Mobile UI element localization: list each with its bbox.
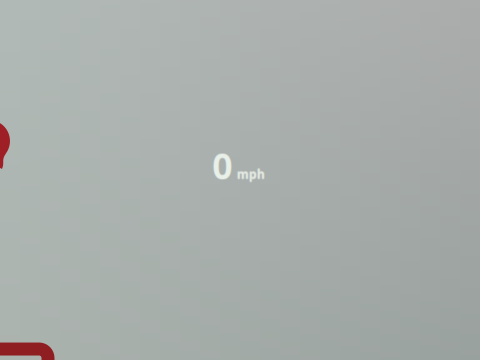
staticText: 0	[212, 142, 232, 188]
staticText: mph	[238, 167, 266, 182]
staticText: 0	[213, 142, 233, 188]
button[interactable]: 0	[0, 0, 480, 360]
staticText: mph	[237, 167, 265, 183]
staticText: 0	[213, 143, 233, 189]
staticText: mph	[238, 166, 266, 182]
staticText: mph	[238, 165, 266, 181]
staticText: mph	[236, 167, 264, 182]
staticText: 0	[212, 143, 232, 189]
staticText: mph	[236, 166, 264, 182]
staticText: mph	[237, 165, 265, 181]
staticText: 0	[211, 142, 231, 188]
staticText: 0	[212, 143, 232, 189]
staticText: 0	[213, 142, 233, 188]
staticText: mph	[237, 166, 265, 182]
staticText: mph	[236, 165, 264, 181]
staticText: 0	[212, 142, 232, 188]
staticText: 0	[212, 141, 232, 187]
